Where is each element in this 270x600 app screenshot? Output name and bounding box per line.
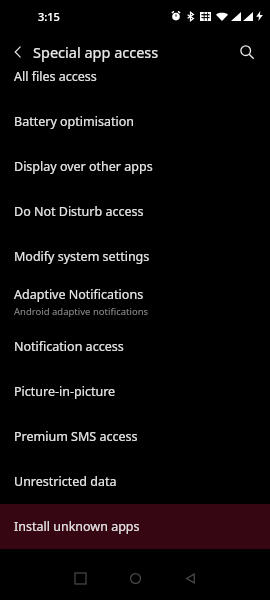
button[interactable]: Back — [3, 37, 33, 67]
button[interactable]: Notification access — [0, 324, 270, 369]
button[interactable]: Unrestricted data — [0, 459, 270, 504]
staticText: Install unknown apps — [14, 518, 140, 535]
staticText: Do Not Disturb access — [14, 203, 144, 220]
button[interactable]: Premium SMS access — [0, 414, 270, 459]
staticText: Picture-in-picture — [14, 383, 116, 400]
button[interactable]: Home — [117, 560, 153, 596]
button[interactable]: Do Not Disturb access — [0, 189, 270, 234]
button[interactable]: Search — [230, 35, 264, 69]
button[interactable]: Back — [172, 560, 208, 596]
staticText: Notification access — [14, 338, 124, 355]
staticText: Premium SMS access — [14, 428, 138, 445]
button[interactable]: Adaptive Notifications — [0, 279, 270, 324]
button[interactable]: Battery optimisation — [0, 99, 270, 144]
button[interactable]: All files access — [0, 54, 270, 99]
button[interactable]: Display over other apps — [0, 144, 270, 189]
button[interactable]: Picture-in-picture — [0, 369, 270, 414]
staticText: Android adaptive notifications — [14, 305, 149, 318]
staticText: Special app access — [33, 42, 159, 62]
staticText: 3:15 — [38, 9, 60, 24]
button[interactable]: Modify system settings — [0, 234, 270, 279]
staticText: Unrestricted data — [14, 473, 117, 490]
button[interactable]: Recents — [62, 560, 98, 596]
staticText: Display over other apps — [14, 158, 153, 175]
staticText: All files access — [14, 68, 97, 85]
staticText: Battery optimisation — [14, 113, 134, 130]
staticText: Adaptive Notifications — [14, 286, 144, 303]
button[interactable]: Install unknown apps — [0, 504, 270, 549]
staticText: Modify system settings — [14, 248, 150, 265]
